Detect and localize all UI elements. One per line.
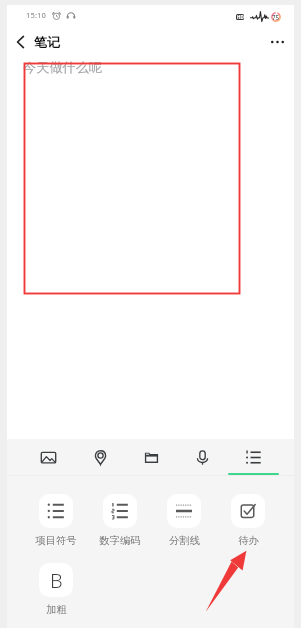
staticText: 数字编码 [99,534,141,547]
staticText: 今天做什么呢 [23,59,103,76]
staticText: 75 [272,13,280,21]
button[interactable]: Back [7,28,34,55]
button[interactable]: Files [126,439,177,475]
button[interactable]: 项目符号 [24,494,88,547]
staticText: B [50,567,63,594]
button[interactable]: B [24,563,88,616]
staticText: HD [237,14,244,20]
button[interactable]: 数字编码 [88,494,152,547]
button[interactable]: Add location [74,439,126,475]
button[interactable]: More options [262,27,292,56]
staticText: 15:10 [26,10,46,20]
staticText: 加粗 [46,603,67,616]
staticText: 笔记 [34,34,60,50]
staticText: 分割线 [169,534,200,547]
staticText: 待办 [238,534,259,547]
button[interactable]: Insert image [22,439,74,475]
button[interactable]: List format [228,439,279,475]
button[interactable]: Voice input [177,439,228,475]
staticText: 项目符号 [35,534,77,547]
button[interactable]: 分割线 [152,494,216,547]
button[interactable]: 待办 [216,494,280,547]
